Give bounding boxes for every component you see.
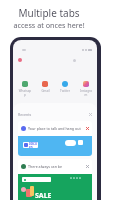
- staticText: DISCORD: [29, 142, 37, 148]
- button[interactable]: Whatsapp: [18, 81, 32, 97]
- button[interactable]: Gmail: [38, 81, 52, 93]
- staticText: Twitter: [60, 89, 70, 93]
- staticText: Recents: [18, 112, 32, 117]
- staticText: There always can be: [28, 164, 63, 169]
- other: Close tab: [86, 165, 89, 168]
- button[interactable]: Twitter: [58, 81, 72, 93]
- staticText: access at onces here!: [13, 20, 85, 30]
- staticText: Gmail: [41, 89, 50, 93]
- button[interactable]: Your place to talk and hang out: [18, 121, 92, 156]
- other: Close tab: [86, 127, 89, 130]
- staticText: Multiple tabs: [18, 6, 80, 20]
- button[interactable]: Close all tabs: [89, 113, 92, 116]
- button[interactable]: Instagram: [79, 81, 93, 97]
- button[interactable]: There always can be: [18, 159, 92, 200]
- staticText: SALE: [35, 191, 52, 200]
- staticText: Whatsapp: [18, 89, 32, 97]
- staticText: Your place to talk and hang out: [28, 126, 81, 131]
- staticText: Instagram: [79, 89, 93, 97]
